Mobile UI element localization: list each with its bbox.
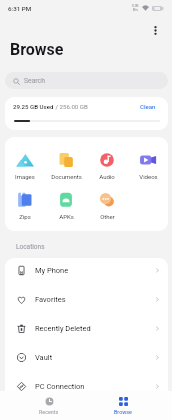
staticText: APKs	[59, 213, 74, 220]
staticText: Locations	[16, 243, 45, 251]
staticText: Audio	[99, 173, 115, 180]
staticText: 29.25 GB Used	[13, 103, 54, 110]
staticText: Clean	[140, 103, 156, 110]
button[interactable]: Audio	[87, 151, 127, 180]
staticText: Favorites	[35, 295, 66, 304]
button[interactable]: PC Connection	[5, 372, 168, 401]
staticText: Zips	[19, 213, 31, 220]
staticText: 6:31 PM	[8, 5, 32, 12]
button[interactable]: Documents	[46, 151, 86, 180]
button[interactable]: Browse	[102, 391, 144, 415]
staticText: Images	[15, 173, 35, 180]
button[interactable]: My Phone	[5, 258, 168, 285]
staticText: Recents	[39, 409, 59, 415]
staticText: 100	[154, 7, 160, 11]
staticText: Documents	[51, 173, 82, 180]
button[interactable]: Recents	[28, 391, 70, 415]
staticText: Browse	[114, 409, 132, 415]
button[interactable]: Other	[87, 191, 127, 220]
staticText: Search	[24, 77, 45, 85]
button[interactable]: Zips	[5, 191, 45, 220]
button[interactable]: Clean	[140, 103, 156, 110]
button[interactable]: Images	[5, 151, 45, 180]
staticText: 0.0K	[132, 4, 139, 8]
button[interactable]: Search	[5, 72, 168, 89]
staticText: PC Connection	[35, 382, 85, 391]
button[interactable]: Favorites	[5, 285, 168, 314]
button[interactable]: Vault	[5, 343, 168, 372]
staticText: Browse	[10, 40, 64, 59]
button[interactable]: Videos	[128, 151, 168, 180]
staticText: B/s	[133, 8, 138, 12]
staticText: My Phone	[35, 266, 69, 275]
staticText: Videos	[139, 173, 158, 180]
button[interactable]: More options	[147, 22, 164, 39]
button[interactable]: Recently Deleted	[5, 314, 168, 343]
staticText: Recently Deleted	[35, 324, 91, 333]
staticText: / 256.00 GB	[54, 103, 88, 110]
button[interactable]: APKs	[46, 191, 86, 220]
staticText: Vault	[35, 353, 53, 362]
staticText: Other	[100, 213, 115, 220]
